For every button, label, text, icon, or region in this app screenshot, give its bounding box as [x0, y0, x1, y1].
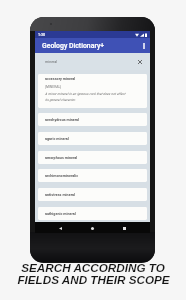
button[interactable]: archimonomineralic [38, 169, 147, 182]
button[interactable]: authigenic mineral [38, 207, 147, 220]
button[interactable]: Clear search [134, 56, 146, 68]
button[interactable]: mineral [35, 53, 150, 70]
button[interactable]: accessory mineral [38, 74, 147, 108]
staticText: authigenic mineral [45, 212, 76, 216]
button[interactable]: aerohydrous mineral [38, 113, 147, 126]
staticText: antistress mineral [45, 193, 75, 197]
staticText: 1:30 [38, 33, 46, 37]
staticText: aerohydrous mineral [45, 118, 80, 122]
button[interactable]: agaric mineral [38, 132, 147, 145]
staticText: mineral [45, 60, 58, 64]
staticText: archimonomineralic [45, 174, 79, 178]
button[interactable]: Back [55, 223, 65, 233]
staticText: [MINERAL] [45, 85, 62, 89]
button[interactable]: amorphous mineral [38, 151, 147, 164]
staticText: Geology Dictionary+ [42, 42, 105, 50]
staticText: SEARCH ACCORDING TO [21, 261, 165, 274]
staticText: accessory mineral [45, 77, 76, 81]
button[interactable]: Home [87, 223, 97, 233]
staticText: its general character. [45, 98, 76, 102]
staticText: FIELDS AND THEIR SCOPE [17, 273, 170, 286]
button[interactable]: antistress mineral [38, 188, 147, 201]
staticText: amorphous mineral [45, 156, 78, 160]
staticText: A minor mineral in an igneous rock that … [45, 92, 126, 96]
button[interactable]: Recent apps [119, 223, 129, 233]
button[interactable]: More options [138, 38, 150, 53]
staticText: agaric mineral [45, 137, 69, 141]
